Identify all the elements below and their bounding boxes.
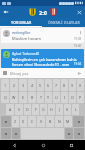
button[interactable]: 4 — [28, 79, 36, 91]
button[interactable]: Aykut Trabzon40 — [1, 49, 84, 68]
button[interactable]: More options — [73, 6, 85, 18]
button[interactable]: Recents — [57, 140, 85, 150]
staticText: I — [64, 95, 66, 100]
button[interactable]: 0 — [77, 79, 84, 91]
staticText: F — [35, 107, 37, 112]
staticText: H — [50, 107, 53, 112]
button[interactable]: N — [55, 116, 63, 127]
button[interactable]: Add attachment — [2, 70, 8, 76]
button[interactable]: ÖNEMLİ OLAYLAR — [42, 18, 85, 26]
staticText: T — [40, 95, 42, 100]
button[interactable]: Back — [0, 140, 29, 150]
button[interactable]: Shift — [1, 116, 11, 127]
button[interactable]: V — [37, 116, 45, 127]
staticText: X — [22, 119, 25, 124]
staticText: D — [26, 107, 29, 112]
button[interactable]: B — [46, 116, 54, 127]
staticText: V — [40, 119, 43, 124]
staticText: L — [75, 107, 77, 112]
staticText: YORUMLAR — [11, 20, 32, 25]
button[interactable]: Emoji — [12, 128, 20, 139]
staticText: 4 — [31, 83, 34, 88]
button[interactable]: Y — [45, 92, 52, 103]
button[interactable]: 2 — [10, 79, 18, 91]
button[interactable]: A — [6, 104, 14, 115]
button[interactable]: U — [53, 92, 60, 103]
button[interactable]: W — [10, 92, 18, 103]
staticText: ÖNEMLİ OLAYLAR — [48, 20, 80, 25]
button[interactable]: 9 — [69, 79, 76, 91]
staticText: R — [31, 95, 34, 100]
button[interactable]: 8 — [61, 79, 68, 91]
button[interactable]: Symbols — [1, 128, 11, 139]
button[interactable]: Z — [12, 116, 19, 127]
staticText: melengiller — [12, 30, 31, 35]
staticText: C — [31, 119, 34, 124]
staticText: 2 — [13, 83, 16, 88]
staticText: 19:38 — [74, 37, 82, 41]
button[interactable]: X — [20, 116, 27, 127]
button[interactable]: G — [40, 104, 47, 115]
button[interactable]: Send — [75, 69, 83, 77]
staticText: 8 — [63, 83, 66, 88]
button[interactable]: O — [69, 92, 76, 103]
staticText: 7 — [55, 83, 58, 88]
staticText: W — [12, 95, 16, 100]
staticText: 19:40 — [74, 44, 82, 48]
staticText: Q — [4, 95, 7, 100]
staticText: 0 — [79, 83, 82, 88]
button[interactable]: R — [28, 92, 36, 103]
button[interactable]: K — [64, 104, 71, 115]
button[interactable]: melengiller — [1, 28, 84, 43]
staticText: 19:54 — [74, 62, 82, 66]
button[interactable]: P — [77, 92, 84, 103]
button[interactable]: Enter — [74, 128, 84, 139]
button[interactable]: H — [48, 104, 55, 115]
staticText: Mesaj yaz — [10, 71, 29, 76]
button[interactable]: C — [28, 116, 36, 127]
button[interactable]: Mesaj yaz — [10, 68, 75, 78]
staticText: 3 — [22, 83, 25, 88]
button[interactable]: Back — [0, 6, 12, 18]
button[interactable]: 6 — [45, 79, 52, 91]
staticText: 5 — [39, 83, 42, 88]
staticText: K — [66, 107, 69, 112]
button[interactable]: D — [24, 104, 31, 115]
button[interactable]: Period — [65, 128, 73, 139]
button[interactable]: S — [15, 104, 23, 115]
staticText: 6 — [47, 83, 50, 88]
staticText: S — [18, 107, 20, 112]
staticText: Müslüm hocam — [12, 36, 42, 41]
staticText: J — [59, 107, 60, 112]
button[interactable]: 1 — [1, 79, 9, 91]
staticText: O — [71, 95, 74, 100]
staticText: B — [49, 119, 52, 124]
staticText: Z — [14, 119, 17, 124]
button[interactable]: 3 — [19, 79, 27, 91]
staticText: U — [55, 95, 58, 100]
staticText: A — [9, 107, 12, 112]
staticText: E — [22, 95, 24, 100]
staticText: P — [79, 95, 82, 100]
staticText: G — [42, 107, 45, 112]
staticText: N — [58, 119, 61, 124]
button[interactable]: 5 — [37, 79, 44, 91]
staticText: Bahisçilerin en çok kazandıran bahis for… — [12, 57, 82, 66]
button[interactable]: Backspace — [73, 116, 84, 127]
button[interactable]: J — [56, 104, 63, 115]
staticText: 1 — [4, 83, 7, 88]
button[interactable]: I — [61, 92, 68, 103]
button[interactable]: 7 — [53, 79, 60, 91]
button[interactable]: YORUMLAR — [0, 18, 42, 26]
button[interactable]: Home — [29, 140, 57, 150]
button[interactable]: F — [32, 104, 39, 115]
staticText: M — [66, 119, 70, 124]
button[interactable]: M — [64, 116, 72, 127]
button[interactable]: T — [37, 92, 44, 103]
button[interactable]: Message options — [78, 30, 82, 34]
staticText: 2:0 — [39, 9, 47, 16]
button[interactable]: L — [72, 104, 79, 115]
button[interactable]: Q — [1, 92, 9, 103]
button[interactable]: E — [19, 92, 27, 103]
